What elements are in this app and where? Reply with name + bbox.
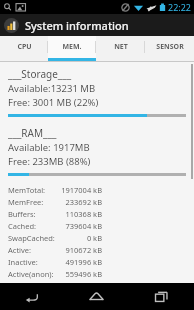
- staticText: SwapCached:: [8, 233, 55, 243]
- button[interactable]: Back: [0, 283, 64, 310]
- staticText: NET: [114, 42, 128, 52]
- staticText: 910672 kB: [56, 245, 102, 255]
- button[interactable]: CPU: [0, 36, 48, 58]
- staticText: SENSOR: [156, 42, 184, 52]
- staticText: Buffers:: [8, 209, 36, 219]
- staticText: Active(anon):: [8, 269, 54, 279]
- staticText: 110368 kB: [56, 209, 102, 219]
- staticText: 491996 kB: [56, 257, 102, 267]
- button[interactable]: SENSOR: [145, 36, 194, 58]
- staticText: Cached:: [8, 221, 37, 231]
- staticText: MEM.: [62, 42, 82, 52]
- staticText: System information: [25, 18, 129, 33]
- staticText: 233692 kB: [56, 197, 102, 207]
- staticText: Available: 1917MB: [8, 141, 90, 154]
- staticText: 1917004 kB: [56, 185, 102, 195]
- staticText: MemFree:: [8, 197, 44, 207]
- button[interactable]: NET: [96, 36, 145, 58]
- staticText: Free: 233MB (88%): [8, 155, 91, 168]
- staticText: 739604 kB: [56, 221, 102, 231]
- staticText: ___RAM___: [8, 126, 57, 140]
- staticText: Available:13231 MB: [8, 82, 96, 95]
- staticText: Active:: [8, 245, 32, 255]
- staticText: MemTotal:: [8, 185, 46, 195]
- button[interactable]: Home: [64, 283, 129, 310]
- staticText: 22:22: [168, 1, 192, 13]
- button[interactable]: System information: [0, 14, 194, 36]
- staticText: ___Storage___: [8, 67, 72, 81]
- staticText: CPU: [17, 42, 32, 52]
- button[interactable]: MEM.: [48, 36, 96, 58]
- staticText: Free: 3001 MB (22%): [8, 96, 99, 109]
- staticText: 559496 kB: [56, 269, 102, 279]
- staticText: Inactive:: [8, 257, 38, 267]
- staticText: 0 kB: [56, 233, 102, 243]
- button[interactable]: Recent apps: [129, 283, 194, 310]
